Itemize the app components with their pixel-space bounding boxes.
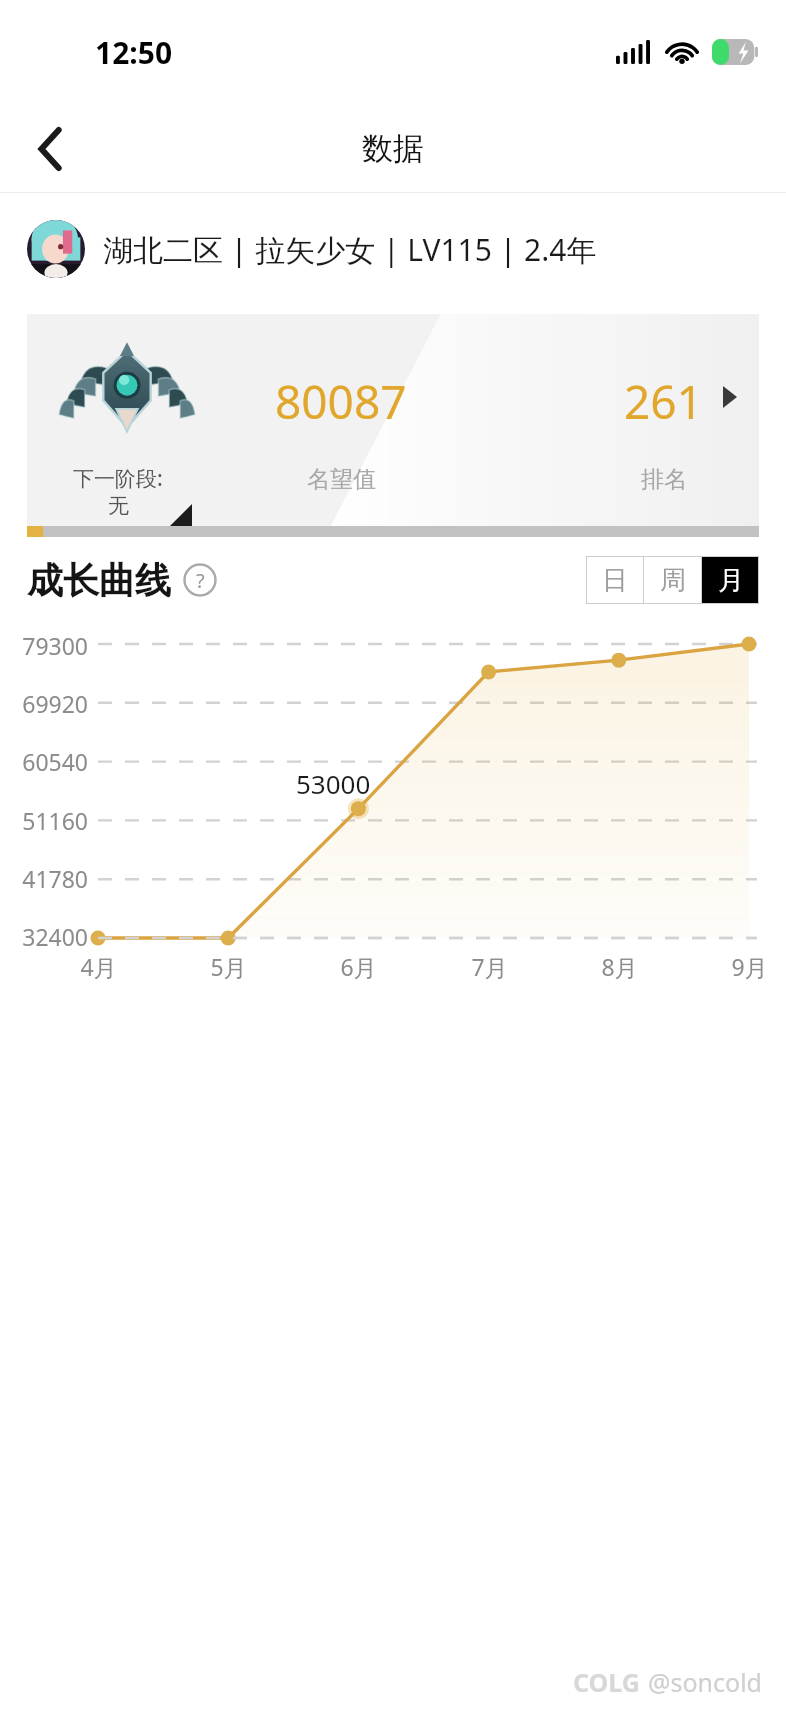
staticText: ? — [196, 567, 205, 594]
staticText: 9月 — [731, 951, 768, 982]
button[interactable]: 月 — [702, 556, 759, 604]
button[interactable]: Help — [183, 563, 217, 597]
staticText: 60540 — [22, 746, 88, 777]
staticText: 32400 — [22, 921, 88, 952]
staticText: 53000 — [296, 766, 371, 801]
button[interactable]: 周 — [644, 556, 701, 604]
staticText: 月 — [718, 564, 744, 597]
staticText: 6月 — [340, 951, 377, 982]
staticText: 成长曲线 — [27, 558, 171, 603]
staticText: 数据 — [362, 129, 424, 168]
staticText: 79300 — [22, 630, 88, 661]
button[interactable]: 下一阶段: — [27, 314, 759, 537]
staticText: 下一阶段: — [73, 464, 163, 493]
button[interactable]: 湖北二区 | 拉矢少女 | LV115 | 2.4年 — [0, 193, 786, 305]
staticText: 5月 — [210, 951, 247, 982]
staticText: COLG — [573, 1665, 640, 1699]
staticText: 排名 — [641, 465, 687, 494]
staticText: 名望值 — [307, 465, 376, 494]
staticText: 41780 — [22, 863, 88, 894]
staticText: 湖北二区 | 拉矢少女 | LV115 | 2.4年 — [103, 229, 597, 270]
staticText: 51160 — [22, 805, 88, 836]
staticText: 8月 — [601, 951, 638, 982]
staticText: 4月 — [80, 951, 117, 982]
staticText: 69920 — [22, 688, 88, 719]
staticText: 7月 — [471, 951, 508, 982]
staticText: @soncold — [648, 1665, 762, 1699]
staticText: 80087 — [275, 370, 407, 433]
button[interactable]: Back — [18, 116, 84, 182]
staticText: 无 — [108, 493, 129, 519]
button[interactable]: 日 — [586, 556, 643, 604]
staticText: 261 — [624, 370, 703, 433]
staticText: 12:50 — [95, 32, 173, 73]
staticText: 周 — [660, 564, 686, 597]
staticText: 日 — [602, 564, 628, 597]
